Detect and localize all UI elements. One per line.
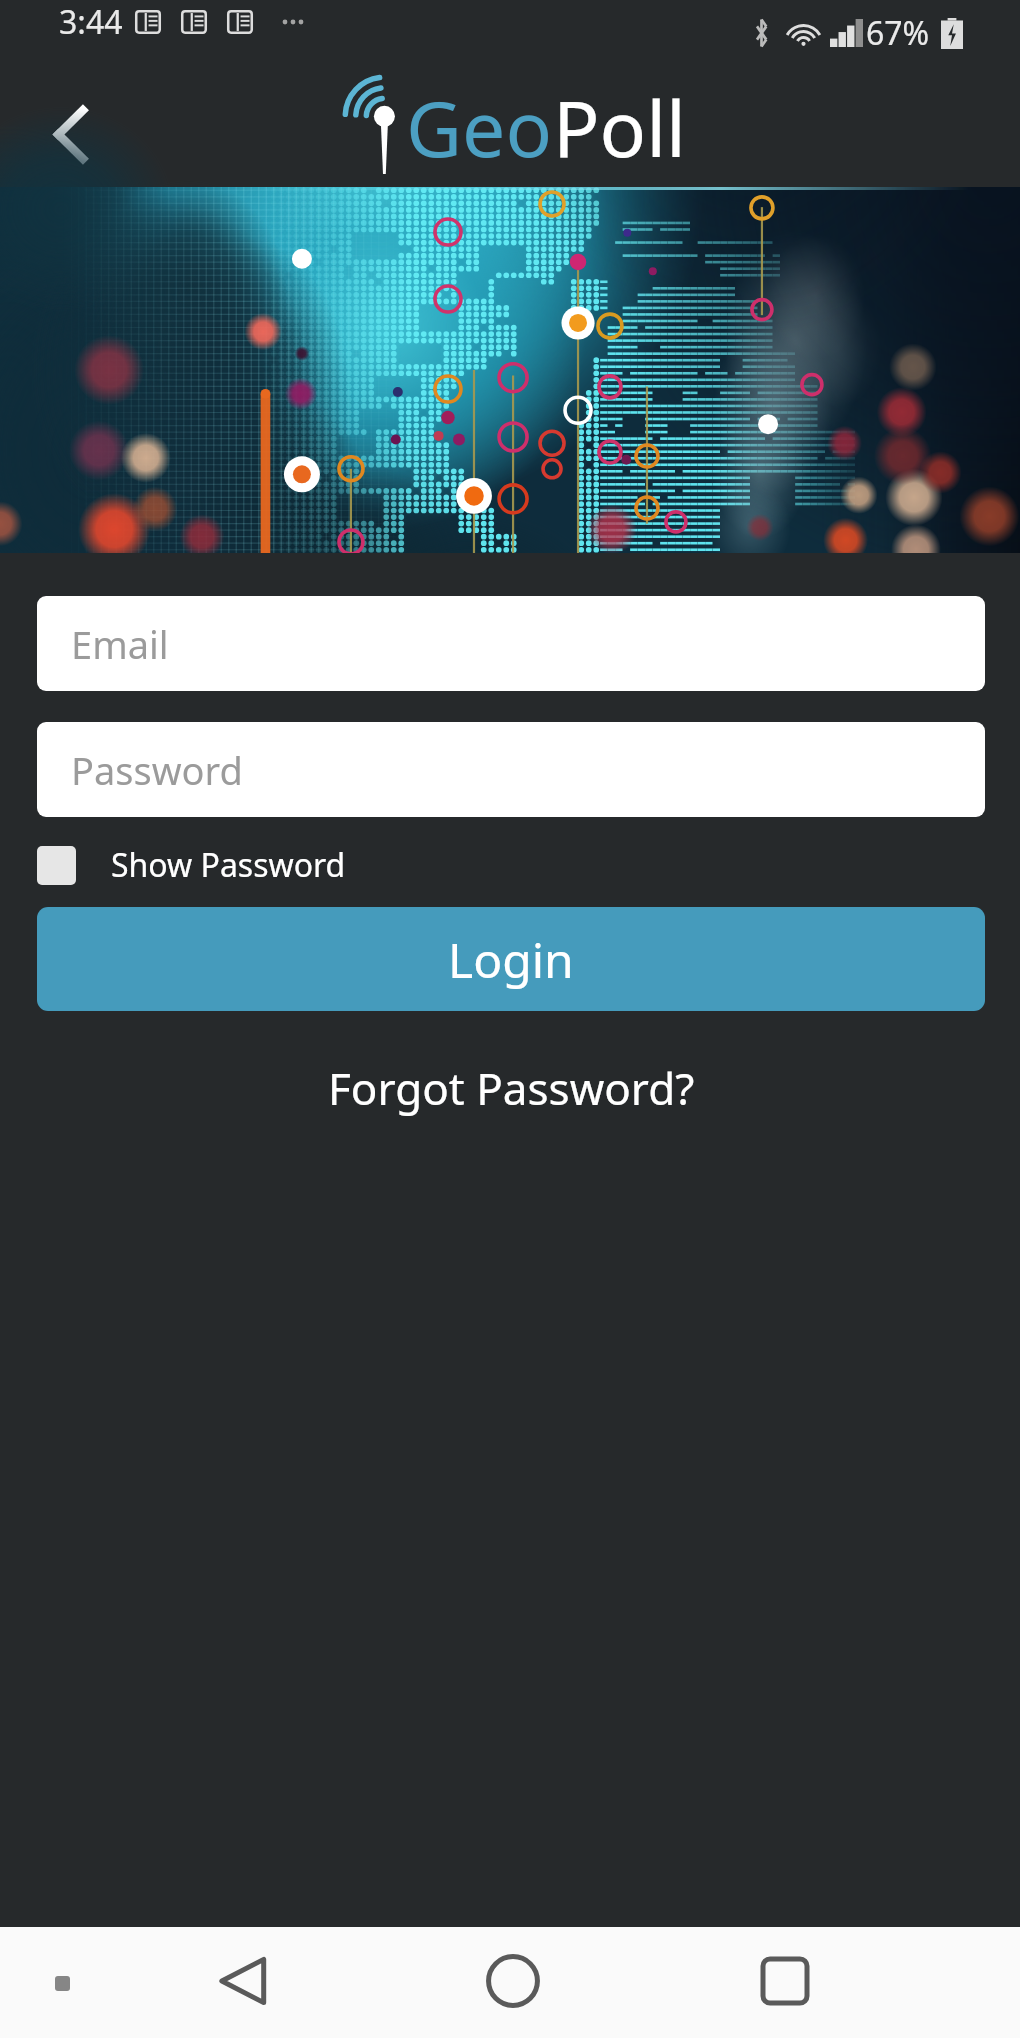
button[interactable]: Switch keyboard xyxy=(39,1960,85,2006)
staticText: Geo xyxy=(406,75,553,180)
staticText: 67% xyxy=(866,11,930,55)
staticText: Show Password xyxy=(111,843,346,887)
staticText: Poll xyxy=(553,75,686,180)
button[interactable]: Back xyxy=(30,87,110,167)
button[interactable]: Back xyxy=(198,1936,288,2026)
button[interactable]: Login xyxy=(37,907,985,1011)
button[interactable]: Password xyxy=(37,722,985,817)
button[interactable]: Recent apps xyxy=(740,1936,830,2026)
staticText: Email xyxy=(71,618,169,670)
button[interactable]: Home xyxy=(468,1936,558,2026)
staticText: Password xyxy=(71,744,243,796)
staticText: 3:44 xyxy=(59,0,123,44)
button[interactable]: Email xyxy=(37,596,985,691)
staticText: Login xyxy=(448,927,574,992)
button[interactable]: Forgot Password? xyxy=(316,1052,707,1124)
button[interactable]: Show Password xyxy=(37,843,346,887)
